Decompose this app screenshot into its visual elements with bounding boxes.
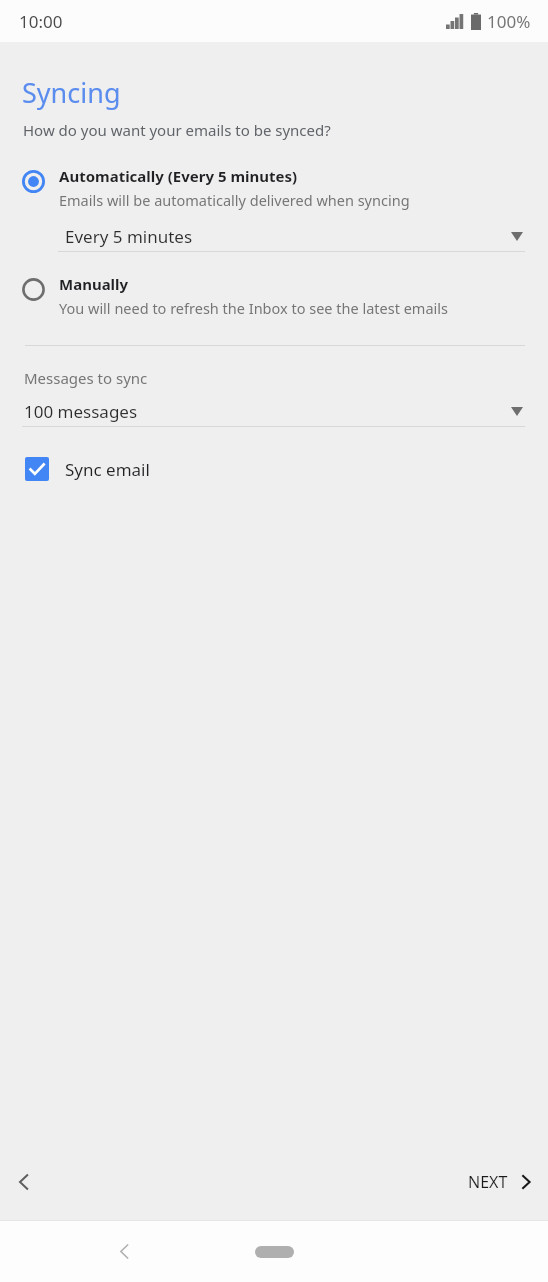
staticText: NEXT [468, 1171, 508, 1193]
staticText: Manually [59, 274, 129, 294]
button[interactable]: Automatically (Every 5 minutes) [0, 162, 548, 212]
button[interactable]: Manually [0, 270, 548, 320]
staticText: Sync email [65, 458, 150, 481]
staticText: Automatically (Every 5 minutes) [59, 166, 298, 186]
button[interactable]: Back [100, 1227, 148, 1275]
staticText: 100 messages [24, 400, 138, 423]
staticText: You will need to refresh the Inbox to se… [59, 298, 479, 318]
button[interactable]: Sync email checkbox [0, 453, 548, 485]
button[interactable]: Home [255, 1246, 294, 1258]
staticText: 100% [487, 10, 531, 33]
button[interactable]: 100 messages [22, 396, 525, 427]
button[interactable]: NEXT [448, 1161, 548, 1203]
staticText: Syncing [22, 74, 121, 111]
staticText: How do you want your emails to be synced… [23, 120, 331, 140]
button[interactable]: Every 5 minutes [58, 221, 525, 252]
staticText: Emails will be automatically delivered w… [59, 190, 410, 210]
staticText: Every 5 minutes [65, 225, 193, 248]
staticText: Messages to sync [24, 368, 148, 388]
button[interactable]: Back [0, 1158, 48, 1206]
other: Sync email checkbox [25, 457, 49, 481]
staticText: 10:00 [19, 10, 63, 33]
